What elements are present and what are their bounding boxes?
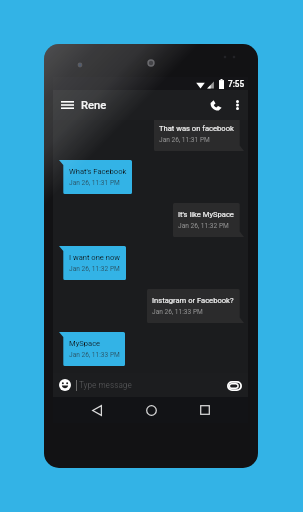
staticText: Jan 26, 11:33 PM [69, 351, 120, 359]
button[interactable]: What's Facebook [59, 160, 132, 194]
button[interactable]: It's like MySpace [173, 203, 244, 237]
button[interactable]: Home [140, 399, 162, 421]
button[interactable]: Insert emoji [58, 378, 72, 392]
button[interactable]: Recent apps [194, 399, 216, 421]
staticText: Instagram or Facebook? [152, 296, 234, 305]
button[interactable]: Instagram or Facebook? [147, 289, 244, 323]
button[interactable]: More options [228, 96, 246, 114]
button[interactable]: MySpace [59, 332, 125, 366]
staticText: That was on facebook [159, 124, 234, 133]
staticText: Type message [79, 380, 132, 390]
staticText: It's like MySpace [178, 210, 234, 219]
button[interactable]: Attach file [226, 377, 243, 394]
staticText: Jan 26, 11:32 PM [178, 222, 229, 230]
staticText: MySpace [69, 339, 101, 348]
staticText: 7:55 [228, 79, 245, 89]
button[interactable]: Open navigation drawer [57, 95, 77, 115]
button[interactable]: Call [205, 94, 227, 116]
button[interactable]: Back [86, 399, 108, 421]
button[interactable]: I want one now [59, 246, 126, 280]
staticText: Jan 26, 11:33 PM [152, 308, 203, 316]
staticText: What's Facebook [69, 167, 127, 176]
staticText: Rene [81, 99, 107, 112]
button[interactable]: That was on facebook [154, 120, 244, 151]
staticText: Jan 26, 11:32 PM [69, 265, 120, 273]
staticText: Jan 26, 11:31 PM [159, 136, 210, 144]
staticText: Jan 26, 11:31 PM [69, 179, 120, 187]
staticText: I want one now [69, 253, 121, 262]
